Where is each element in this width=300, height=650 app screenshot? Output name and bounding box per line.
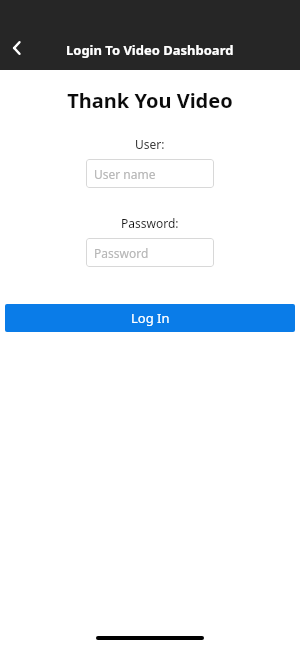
staticText: Thank You Video: [67, 87, 233, 114]
staticText: User name: [94, 166, 156, 182]
staticText: Log In: [131, 309, 170, 327]
button[interactable]: Password: [86, 238, 214, 267]
staticText: Password: [94, 245, 149, 261]
staticText: User:: [135, 136, 165, 152]
button[interactable]: Back: [3, 33, 33, 63]
button[interactable]: Log In: [5, 304, 295, 332]
button[interactable]: User name: [86, 159, 214, 188]
staticText: Login To Video Dashboard: [66, 41, 234, 59]
staticText: Password:: [121, 215, 179, 231]
